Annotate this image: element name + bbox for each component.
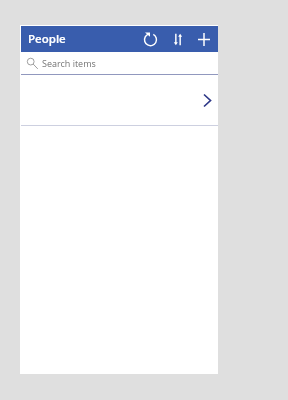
staticText: People [28, 31, 66, 47]
button[interactable]: Open item [21, 75, 218, 125]
staticText: Search items [42, 57, 96, 69]
button[interactable]: Refresh [137, 26, 164, 52]
button[interactable]: Sort [164, 26, 191, 52]
button[interactable]: Add [190, 26, 217, 52]
button[interactable]: Search items [21, 52, 218, 74]
